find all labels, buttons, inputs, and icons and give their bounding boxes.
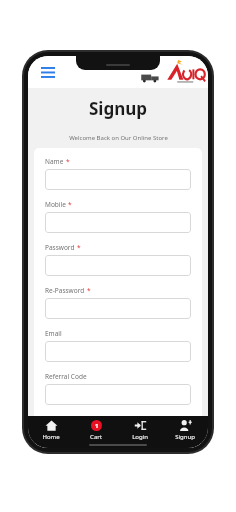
staticText: *	[66, 157, 70, 166]
button[interactable]: Email input field	[45, 341, 191, 362]
button[interactable]: Cart	[75, 419, 117, 448]
staticText: Password	[45, 243, 75, 252]
button[interactable]: Zabiq home	[140, 59, 202, 85]
staticText: *	[87, 286, 91, 295]
staticText: Login	[132, 433, 148, 441]
staticText: *	[77, 243, 81, 252]
staticText: Cart	[90, 433, 102, 441]
button[interactable]: Home	[30, 419, 72, 448]
button[interactable]: Open navigation menu	[38, 62, 58, 82]
staticText: Home	[42, 433, 60, 441]
button[interactable]: Signup	[164, 419, 206, 448]
staticText: Mobile	[45, 200, 66, 209]
staticText: Email	[45, 329, 62, 338]
staticText: Signup	[175, 433, 195, 441]
button[interactable]: Name input field	[45, 169, 191, 190]
staticText: *	[68, 200, 72, 209]
staticText: Signup	[89, 97, 148, 120]
staticText: Name	[45, 157, 64, 166]
button[interactable]: Login	[119, 419, 161, 448]
button[interactable]: Referral Code input field	[45, 384, 191, 405]
staticText: Referral Code	[45, 372, 87, 381]
staticText: 1	[95, 422, 99, 430]
staticText: Re-Password	[45, 286, 85, 295]
button[interactable]: Mobile input field	[45, 212, 191, 233]
button[interactable]: Password input field	[45, 255, 191, 276]
staticText: Welcome Back on Our Online Store	[69, 134, 168, 142]
button[interactable]: Re-Password input field	[45, 298, 191, 319]
